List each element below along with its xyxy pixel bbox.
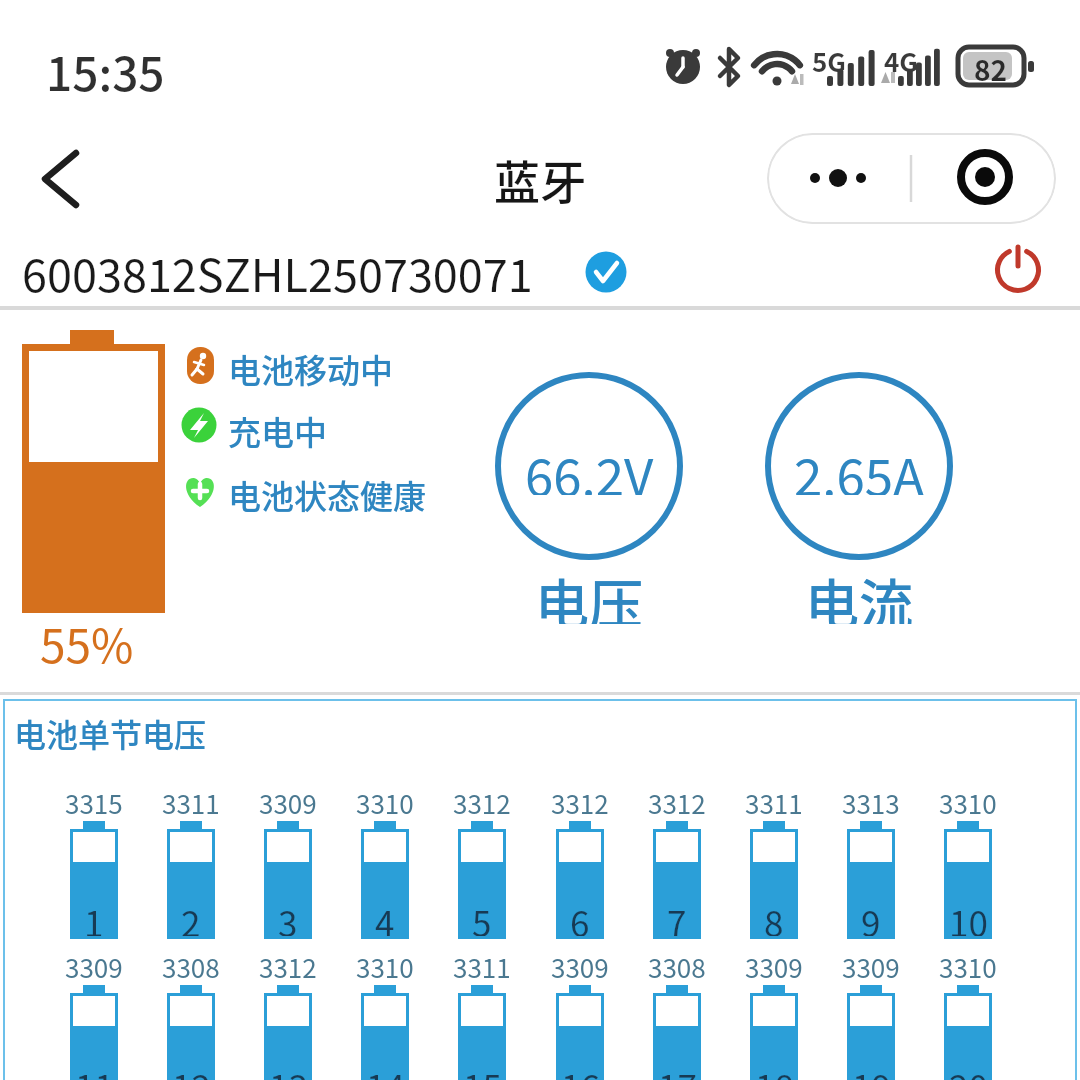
staticText: 82	[974, 49, 1008, 84]
staticText: 3311	[453, 948, 511, 982]
staticText: 8	[764, 896, 784, 936]
staticText: 3309	[65, 948, 123, 982]
staticText: 3309	[551, 948, 609, 982]
staticText: 4	[375, 896, 395, 936]
staticText: 10	[949, 896, 988, 936]
staticText: 11	[75, 1060, 114, 1080]
staticText: 3309	[259, 784, 317, 818]
staticText: 3310	[356, 784, 414, 818]
staticText: 3312	[551, 784, 609, 818]
staticText: 3308	[162, 948, 220, 982]
staticText: 16	[561, 1060, 600, 1080]
staticText: 3310	[939, 784, 997, 818]
staticText: 3312	[259, 948, 317, 982]
staticText: 5G	[812, 42, 846, 74]
button[interactable]	[767, 133, 1056, 224]
staticText: 充电中	[228, 407, 327, 455]
staticText: 3315	[65, 784, 123, 818]
staticText: 蓝牙	[494, 146, 586, 210]
staticText: 电池状态健康	[228, 471, 426, 519]
staticText: 2	[181, 896, 201, 936]
staticText: 3313	[842, 784, 900, 818]
staticText: 3310	[939, 948, 997, 982]
staticText: 7	[667, 896, 687, 936]
button[interactable]	[20, 135, 110, 225]
staticText: 12	[172, 1060, 211, 1080]
staticText: 1	[84, 896, 104, 936]
staticText: 3	[278, 896, 298, 936]
staticText: 55%	[40, 610, 134, 666]
staticText: 9	[861, 896, 881, 936]
staticText: 3312	[453, 784, 511, 818]
staticText: 6	[570, 896, 590, 936]
staticText: 电池单节电压	[14, 710, 207, 754]
staticText: 3311	[745, 784, 803, 818]
staticText: 电流	[805, 562, 913, 624]
staticText: 17	[658, 1060, 697, 1080]
button[interactable]	[986, 238, 1046, 298]
staticText: 4G	[884, 42, 918, 74]
staticText: 18	[755, 1060, 794, 1080]
staticText: 15:35	[46, 38, 165, 98]
staticText: 5	[472, 896, 492, 936]
staticText: 13	[269, 1060, 308, 1080]
staticText: 电压	[535, 562, 643, 624]
staticText: 3311	[162, 784, 220, 818]
staticText: 66.2V	[525, 437, 654, 495]
staticText: 6003812SZHL250730071	[22, 240, 533, 298]
staticText: 3308	[648, 948, 706, 982]
staticText: 19	[852, 1060, 891, 1080]
staticText: 3309	[842, 948, 900, 982]
staticText: 20	[949, 1060, 988, 1080]
staticText: 3309	[745, 948, 803, 982]
staticText: 3312	[648, 784, 706, 818]
staticText: 电池移动中	[228, 345, 393, 393]
staticText: 14	[366, 1060, 405, 1080]
staticText: 3310	[356, 948, 414, 982]
staticText: 15	[463, 1060, 502, 1080]
staticText: 2.65A	[794, 437, 925, 495]
